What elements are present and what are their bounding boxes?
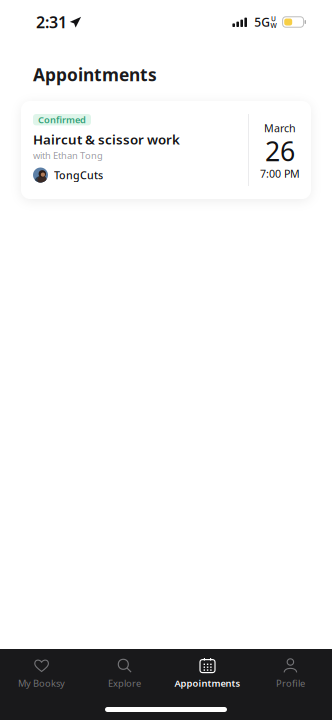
staticText: TongCuts: [54, 168, 103, 182]
staticText: Confirmed: [38, 113, 86, 126]
staticText: W: [271, 21, 277, 30]
staticText: 2:31: [36, 11, 67, 33]
staticText: March: [264, 121, 296, 135]
button[interactable]: Confirmed: [21, 101, 311, 199]
button[interactable]: Appointments: [166, 649, 249, 697]
staticText: 7:00 PM: [260, 167, 300, 181]
staticText: with Ethan Tong: [33, 149, 103, 161]
staticText: Haircut & scissor work: [33, 130, 180, 148]
button[interactable]: Explore: [83, 649, 166, 697]
button[interactable]: Profile: [249, 649, 332, 697]
button[interactable]: My Booksy: [0, 649, 83, 697]
staticText: Appointments: [174, 677, 240, 689]
staticText: My Booksy: [18, 677, 65, 689]
staticText: Appointments: [33, 63, 157, 86]
staticText: 5G: [254, 14, 270, 30]
staticText: 26: [265, 133, 295, 169]
staticText: Profile: [276, 677, 305, 689]
staticText: U: [271, 14, 276, 23]
staticText: Explore: [108, 677, 141, 689]
